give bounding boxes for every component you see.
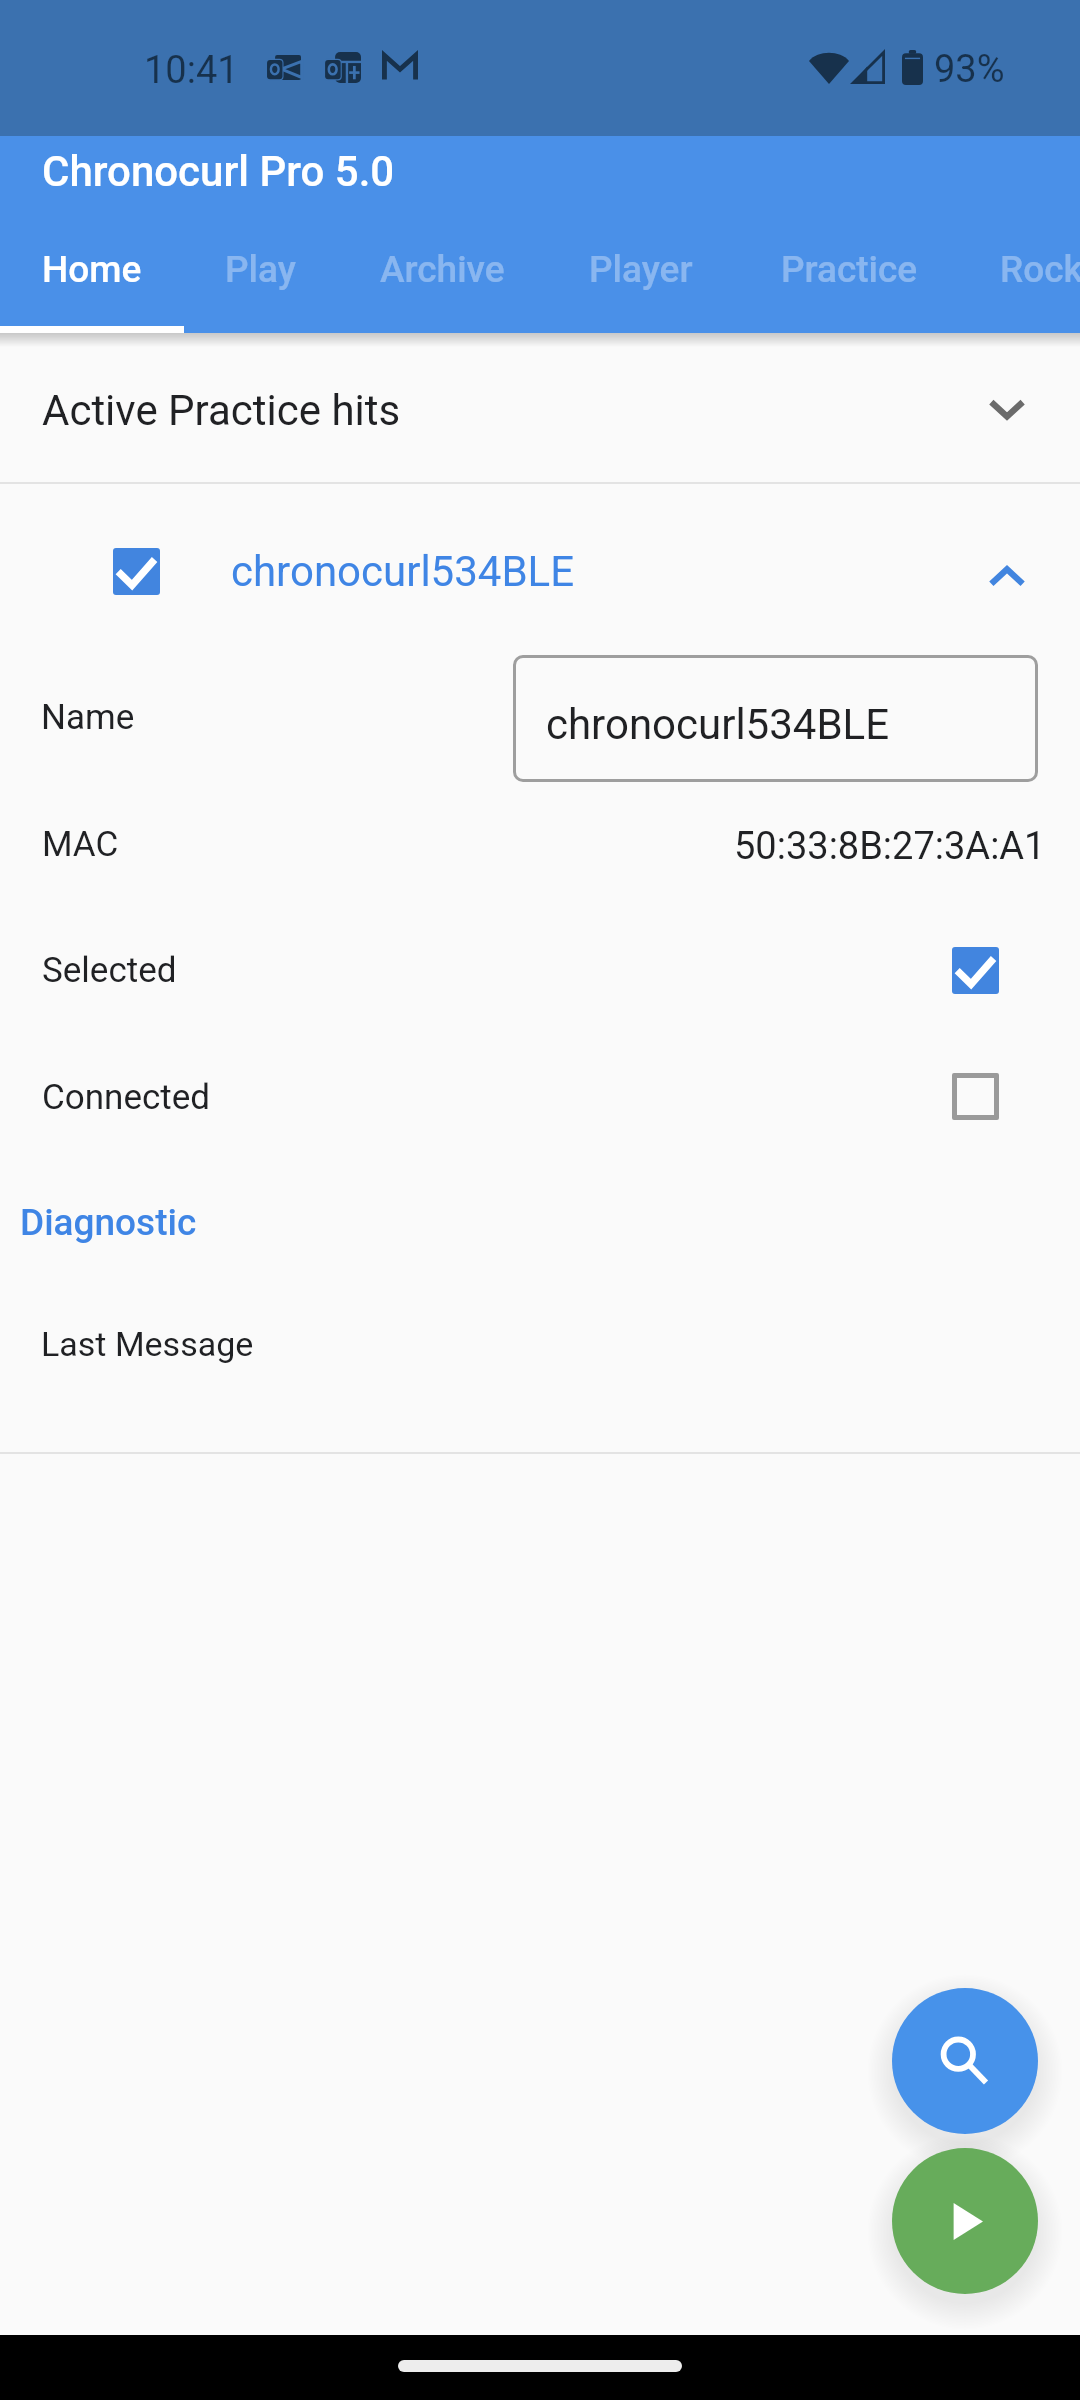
button[interactable]: Connected [0,1048,1080,1174]
staticText: MAC [42,824,119,865]
staticText: Last Message [41,1324,254,1364]
staticText: Selected [42,950,177,991]
staticText: Home [42,248,142,291]
staticText: Active Practice hits [42,386,401,435]
staticText: 10:41 [144,48,239,93]
staticText: 93% [934,47,1005,92]
staticText: chronocurl534BLE [546,700,890,749]
staticText: Play [225,248,296,291]
button[interactable]: Active Practice hits [0,336,1080,482]
staticText: Rock [1000,248,1080,291]
button[interactable]: Archive [337,221,548,321]
button[interactable]: Search [892,1988,1038,2134]
staticText: Practice [781,248,918,291]
staticText: Name [41,697,135,738]
button[interactable]: Selected [0,922,1080,1048]
button[interactable]: Last Message [0,1296,1080,1416]
staticText: 50:33:8B:27:3A:A1 [734,824,1046,869]
staticText: Connected [42,1077,211,1118]
staticText: Archive [380,248,505,291]
button[interactable]: Device enabled [113,548,160,595]
button[interactable]: Play [892,2148,1038,2294]
button[interactable]: Play [184,221,337,321]
button[interactable]: Expand device details [961,531,1053,623]
button[interactable] [513,655,1038,782]
button[interactable]: Home [0,221,184,321]
staticText: Chronocurl Pro 5.0 [42,147,395,196]
button[interactable]: Practice [734,221,964,321]
button[interactable]: Player [548,221,734,321]
button[interactable]: Device enabled [0,484,1080,612]
button[interactable]: Rock [946,221,1080,321]
staticText: Diagnostic [20,1201,197,1244]
staticText: chronocurl534BLE [231,547,575,596]
button[interactable]: Collapse section [961,363,1053,455]
staticText: Player [589,248,693,291]
